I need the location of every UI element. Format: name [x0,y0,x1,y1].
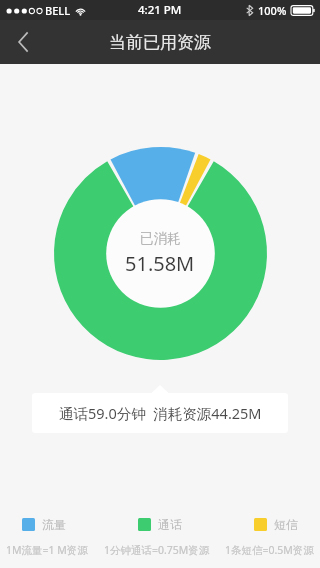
staticText: BELL [45,3,71,18]
staticText: 4:21 PM [138,2,182,18]
button[interactable]: 短信 [254,515,298,534]
staticText: 1M流量=1 M资源 [6,543,88,557]
staticText: 已消耗 [140,230,181,247]
staticText: 51.58M [125,250,195,277]
staticText: 1分钟通话=0.75M资源 [104,543,210,557]
staticText: 通话 [158,517,182,532]
staticText: 当前已用资源 [109,32,211,53]
staticText: 通话59.0分钟 消耗资源44.25M [59,403,262,423]
button[interactable]: 流量 [22,515,66,534]
staticText: 短信 [274,517,298,532]
button[interactable]: Back [0,20,46,64]
staticText: 流量 [42,517,66,532]
staticText: 100% [258,3,287,18]
staticText: 1条短信=0.5M资源 [225,543,314,557]
button[interactable]: 通话 [138,515,182,534]
